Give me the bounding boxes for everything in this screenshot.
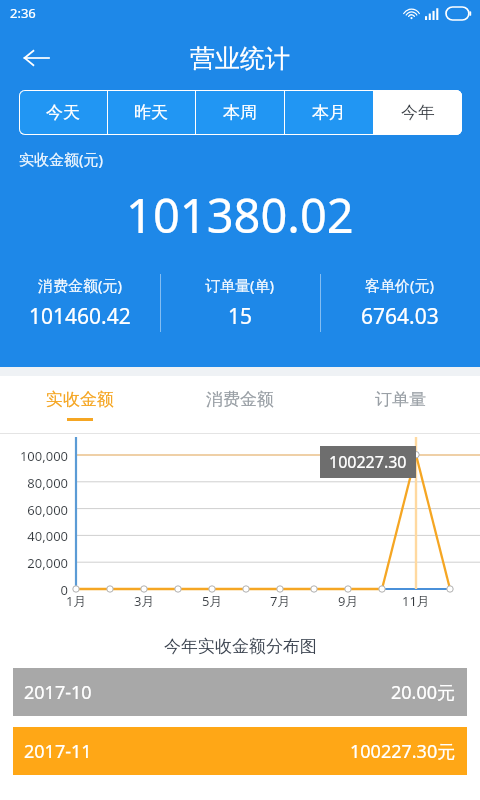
staticText: 5月 bbox=[202, 592, 223, 610]
staticText: 40,000 bbox=[27, 527, 68, 545]
staticText: 消费金额(元) bbox=[38, 275, 123, 295]
staticText: 1月 bbox=[66, 592, 87, 610]
button[interactable]: 2017-10 bbox=[13, 668, 467, 716]
button[interactable]: 消费金额 bbox=[160, 376, 320, 434]
staticText: 80,000 bbox=[27, 474, 68, 492]
button[interactable]: 昨天 bbox=[107, 90, 195, 135]
staticText: 100227.30 bbox=[329, 451, 407, 473]
staticText: 15 bbox=[228, 302, 253, 331]
staticText: 100227.30元 bbox=[350, 739, 456, 764]
button[interactable]: 今年 bbox=[373, 90, 462, 135]
button[interactable]: 2017-11 bbox=[13, 727, 467, 775]
staticText: 101460.42 bbox=[29, 302, 131, 331]
button[interactable]: 本月 bbox=[284, 90, 373, 135]
staticText: 9月 bbox=[338, 592, 359, 610]
button[interactable]: 本周 bbox=[195, 90, 284, 135]
staticText: 消费金额 bbox=[206, 389, 274, 410]
staticText: 100,000 bbox=[19, 447, 68, 465]
button[interactable]: 今天 bbox=[19, 90, 107, 135]
staticText: 实收金额 bbox=[46, 389, 114, 410]
staticText: 3月 bbox=[134, 592, 155, 610]
staticText: 7月 bbox=[270, 592, 291, 610]
staticText: 2017-11 bbox=[24, 739, 92, 764]
staticText: 本月 bbox=[312, 102, 346, 123]
staticText: 实收金额(元) bbox=[19, 149, 104, 169]
button[interactable]: 订单量 bbox=[320, 376, 480, 434]
staticText: 昨天 bbox=[134, 102, 168, 123]
staticText: 20.00元 bbox=[391, 680, 456, 705]
staticText: 0 bbox=[60, 581, 68, 599]
staticText: 60,000 bbox=[27, 501, 68, 519]
staticText: 营业统计 bbox=[190, 43, 290, 74]
staticText: 订单量 bbox=[375, 389, 426, 410]
staticText: 客单价(元) bbox=[365, 275, 435, 295]
staticText: 2:36 bbox=[10, 4, 36, 22]
staticText: 2017-10 bbox=[24, 680, 92, 705]
staticText: 今年 bbox=[401, 102, 435, 123]
staticText: 今天 bbox=[46, 102, 80, 123]
staticText: 订单量(单) bbox=[205, 275, 275, 295]
button[interactable]: Back bbox=[12, 34, 60, 82]
staticText: 6764.03 bbox=[361, 302, 439, 331]
button[interactable]: 实收金额 bbox=[0, 376, 160, 434]
staticText: 11月 bbox=[402, 592, 430, 610]
staticText: 本周 bbox=[223, 102, 257, 123]
staticText: 101380.02 bbox=[126, 183, 354, 247]
staticText: 今年实收金额分布图 bbox=[164, 636, 317, 657]
staticText: 20,000 bbox=[27, 554, 68, 572]
